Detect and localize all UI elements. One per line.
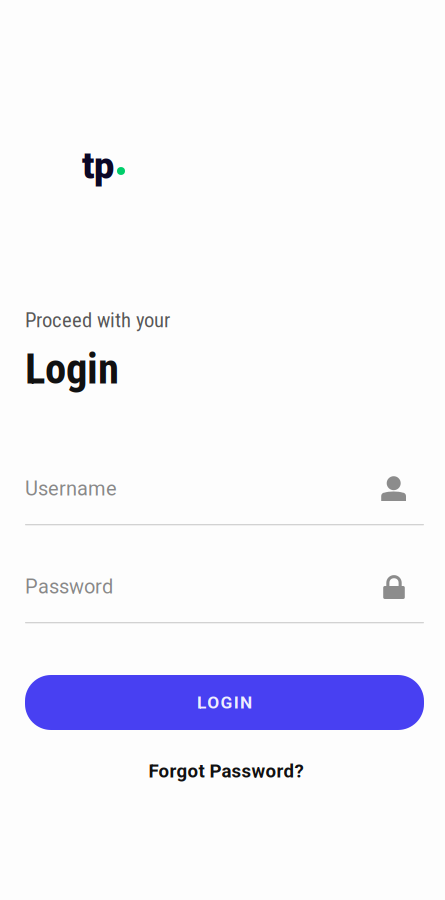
staticText: Login [25, 344, 119, 394]
staticText: Username [25, 477, 117, 500]
button[interactable]: LOGIN [25, 675, 424, 730]
staticText: LOGIN [197, 692, 252, 713]
staticText: Proceed with your [25, 308, 170, 332]
button[interactable]: Username [25, 466, 424, 526]
staticText: Password [25, 575, 113, 598]
staticText: Forgot Password? [148, 760, 303, 782]
button[interactable]: Password [25, 564, 424, 624]
button[interactable]: Forgot Password? [116, 758, 336, 784]
staticText: tp [82, 145, 114, 187]
